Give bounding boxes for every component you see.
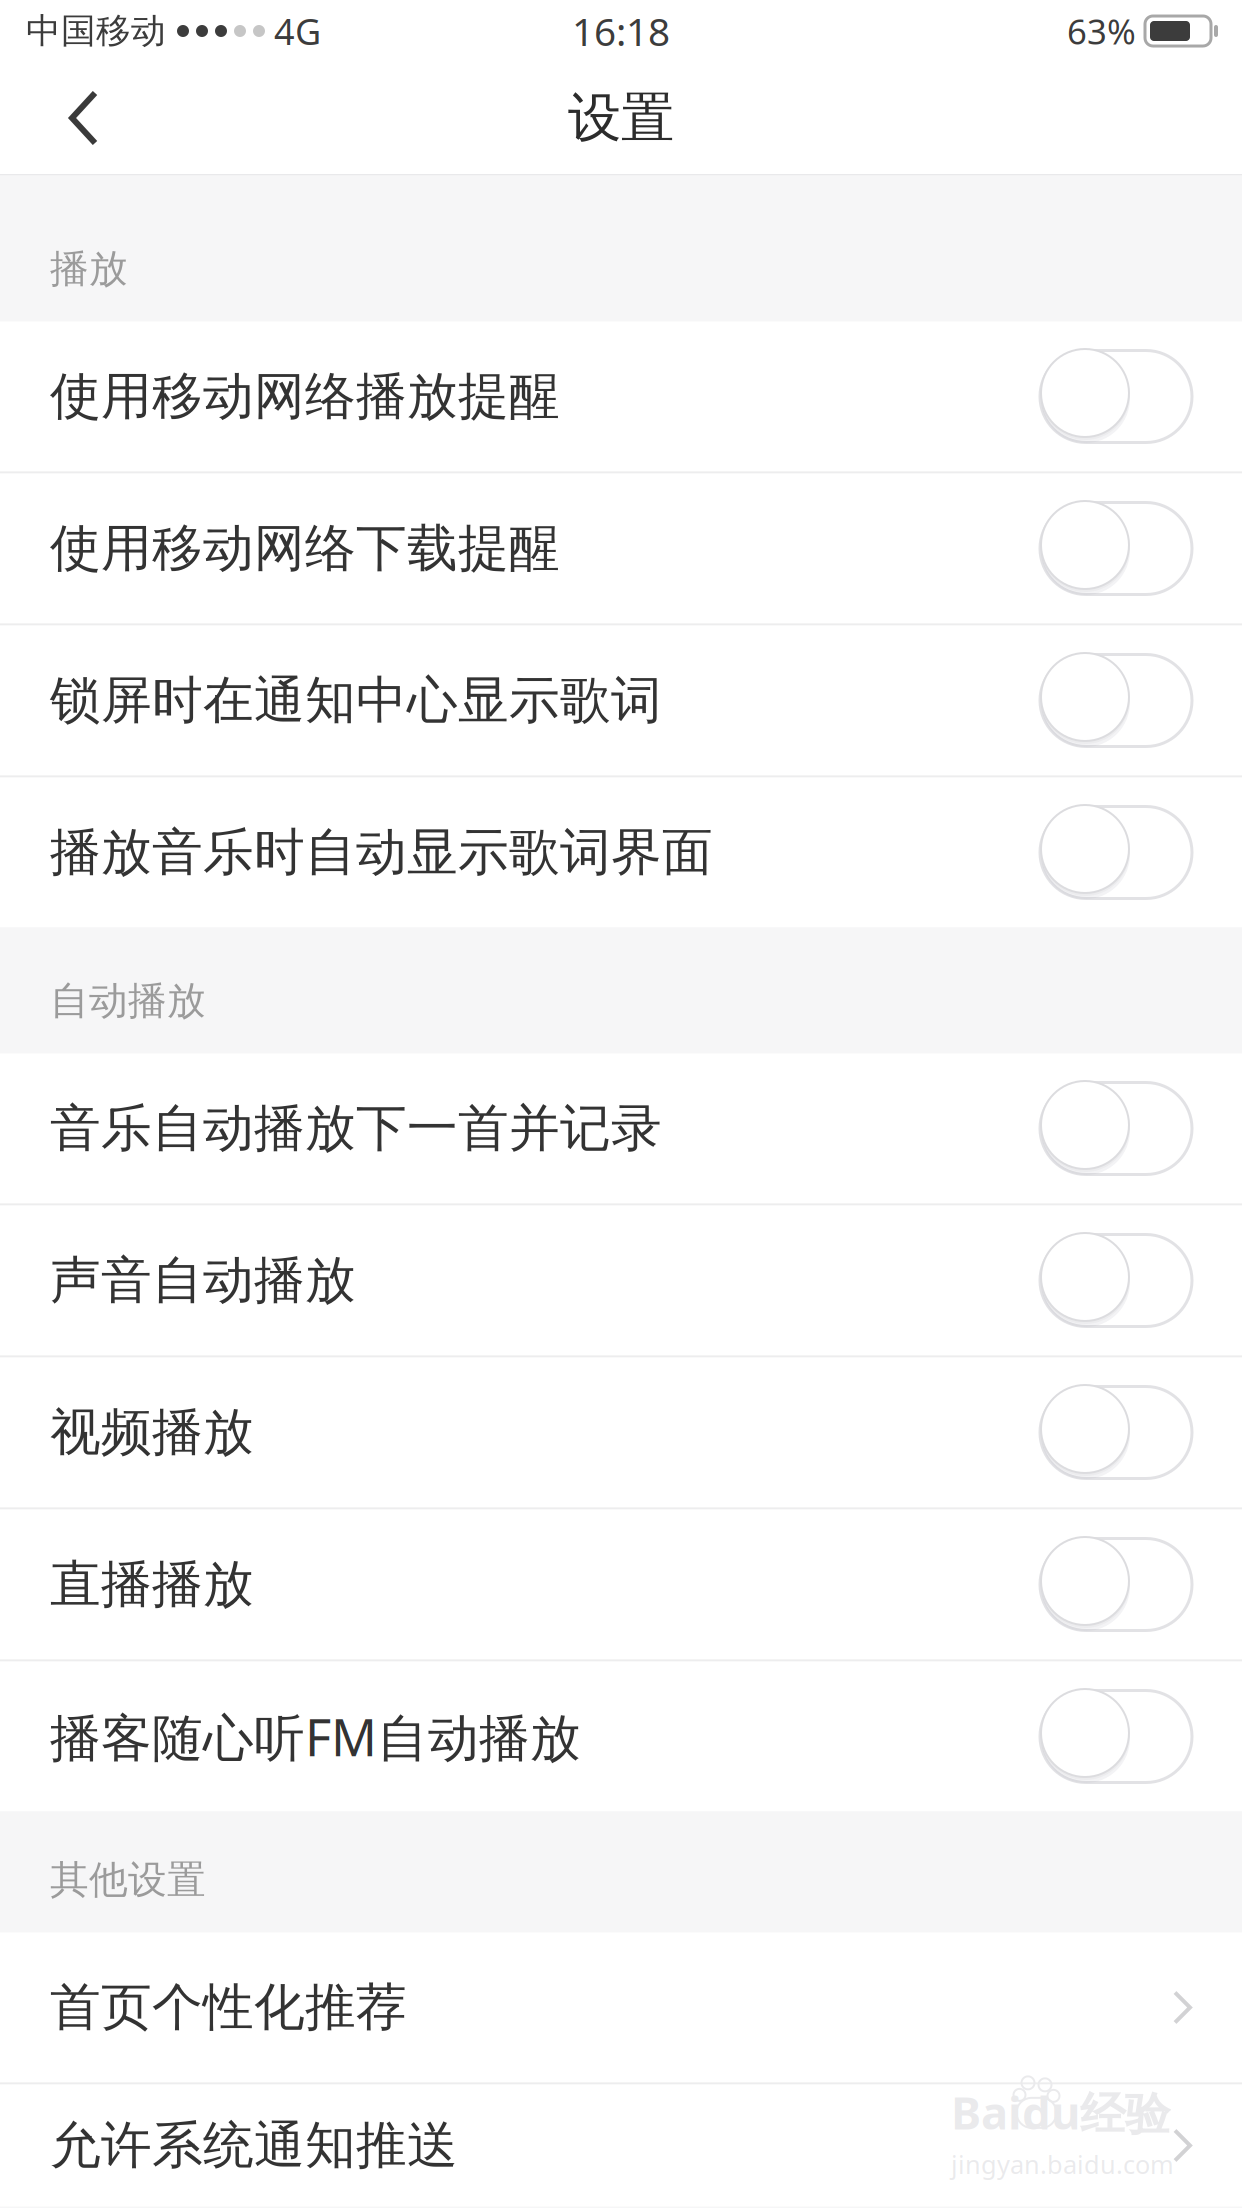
button[interactable]: 播客随心听FM自动播放: [0, 1661, 1242, 1811]
staticText: 使用移动网络播放提醒: [50, 365, 560, 428]
staticText: 视频播放: [50, 1401, 254, 1464]
staticText: 声音自动播放: [50, 1249, 356, 1312]
button[interactable]: 播放音乐时自动显示歌词界面: [0, 777, 1242, 927]
staticText: 播放: [50, 245, 128, 292]
button[interactable]: 声音自动播放: [0, 1205, 1242, 1355]
staticText: 4G: [274, 7, 321, 55]
button[interactable]: 直播播放: [0, 1509, 1242, 1659]
button[interactable]: 允许系统通知推送: [0, 2084, 1242, 2206]
staticText: 锁屏时在通知中心显示歌词: [50, 669, 662, 732]
staticText: Baidu经验: [951, 2082, 1170, 2142]
staticText: 设置: [568, 85, 674, 151]
staticText: jingyan.baidu.com: [951, 2147, 1174, 2181]
staticText: 首页个性化推荐: [50, 1976, 407, 2039]
staticText: 允许系统通知推送: [50, 2114, 458, 2177]
button[interactable]: 视频播放: [0, 1357, 1242, 1507]
button[interactable]: Back: [0, 62, 143, 174]
staticText: 音乐自动播放下一首并记录: [50, 1097, 662, 1160]
staticText: 16:18: [572, 5, 670, 57]
staticText: 使用移动网络下载提醒: [50, 517, 560, 580]
staticText: 直播播放: [50, 1553, 254, 1616]
button[interactable]: 使用移动网络下载提醒: [0, 473, 1242, 623]
staticText: 播放音乐时自动显示歌词界面: [50, 821, 713, 884]
button[interactable]: 锁屏时在通知中心显示歌词: [0, 625, 1242, 775]
staticText: 中国移动: [26, 10, 166, 52]
staticText: 63%: [1067, 8, 1136, 54]
staticText: 其他设置: [50, 1856, 206, 1903]
button[interactable]: 使用移动网络播放提醒: [0, 321, 1242, 471]
button[interactable]: 首页个性化推荐: [0, 1932, 1242, 2082]
staticText: 播客随心听FM自动播放: [50, 1703, 581, 1770]
staticText: 自动播放: [50, 977, 206, 1024]
button[interactable]: 音乐自动播放下一首并记录: [0, 1053, 1242, 1203]
